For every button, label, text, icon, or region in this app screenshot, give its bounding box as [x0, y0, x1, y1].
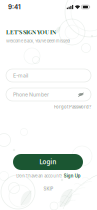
button[interactable]: Phone Number — [6, 88, 91, 101]
button[interactable]: SKIP — [0, 186, 97, 192]
button[interactable]: Sign Up — [64, 173, 81, 179]
staticText: SKIP — [43, 186, 53, 192]
staticText: Phone Number — [13, 91, 49, 98]
button[interactable]: E-mail — [6, 69, 91, 82]
staticText: Don't have an account? — [16, 173, 62, 179]
staticText: E-mail — [13, 72, 28, 79]
staticText: Forgot Password? — [54, 104, 91, 110]
button[interactable]: Login — [13, 154, 83, 170]
staticText: Sign Up — [64, 173, 81, 179]
button[interactable]: Forgot Password? — [6, 104, 91, 110]
staticText: LET'S SIGN YOU IN — [6, 28, 56, 36]
staticText: Welcome Back, You've been missed! — [6, 39, 70, 43]
staticText: 9:41 — [8, 3, 21, 11]
staticText: Login — [39, 158, 56, 166]
